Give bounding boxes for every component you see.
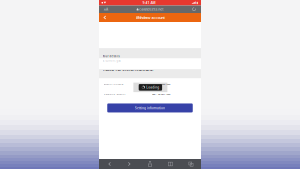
button[interactable]: Setting information — [107, 103, 193, 112]
staticText: 0000 1234 — [161, 82, 170, 86]
staticText: A current gas — [102, 59, 120, 62]
button[interactable]: Bookmarks — [160, 159, 181, 169]
staticText: Receiving account — [103, 92, 125, 96]
button[interactable]: Tabs — [181, 159, 201, 169]
staticText: 9:41 AM — [142, 0, 155, 5]
button[interactable]: Forward — [119, 159, 140, 169]
staticText: ᴀA — [104, 7, 108, 11]
staticText: Your details — [102, 55, 119, 58]
staticText: carate0393.net — [139, 7, 163, 11]
staticText: Classified Cash Business Advance 090 cal… — [102, 68, 153, 72]
button[interactable]: Back — [99, 159, 119, 169]
staticText: Setting information — [135, 106, 165, 110]
staticText: account number — [103, 82, 123, 86]
button[interactable]: Reload — [189, 5, 199, 13]
button[interactable]: Page settings — [101, 5, 111, 13]
button[interactable]: Back — [100, 13, 108, 22]
staticText: Withdraw account — [135, 15, 164, 20]
staticText: Loading — [146, 85, 159, 89]
staticText: ▮ — [196, 1, 198, 4]
staticText: 000 - 00 0011 1234 — [152, 92, 170, 96]
button[interactable]: Share — [140, 159, 160, 169]
